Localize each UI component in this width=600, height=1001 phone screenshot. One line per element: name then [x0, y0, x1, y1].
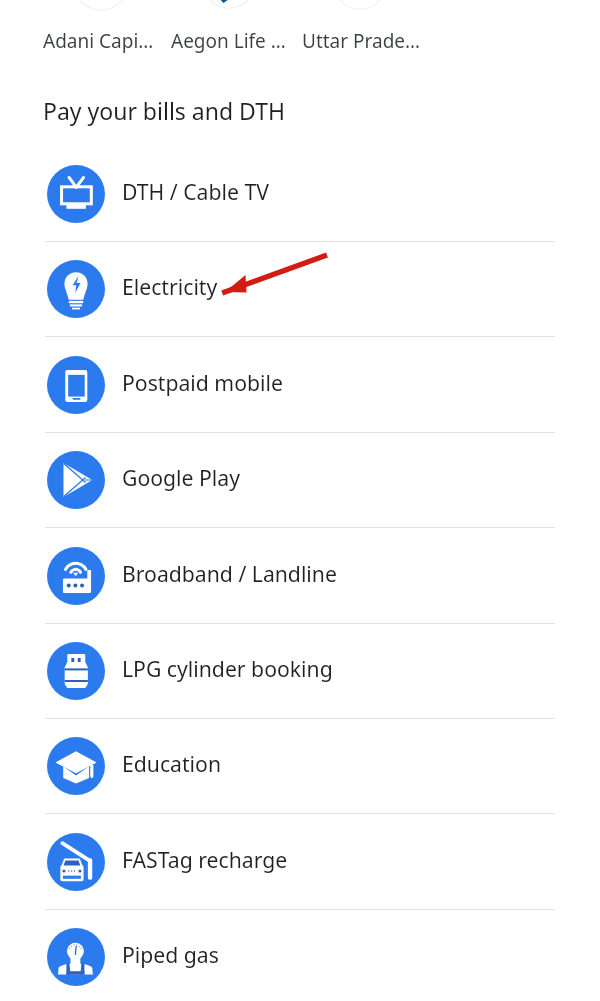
staticText: Aegon Life …: [171, 28, 286, 54]
button[interactable]: Google Play: [0, 432, 600, 527]
button[interactable]: Broadband / Landline: [0, 528, 600, 623]
staticText: Piped gas: [122, 940, 219, 969]
staticText: Google Play: [122, 463, 240, 492]
staticText: Adani Capi…: [43, 28, 154, 54]
button[interactable]: Biller: [201, 0, 257, 9]
button[interactable]: Postpaid mobile: [0, 337, 600, 432]
staticText: Uttar Prade…: [302, 28, 421, 54]
button[interactable]: Biller: [332, 0, 388, 10]
button[interactable]: DTH / Cable TV: [0, 146, 600, 241]
button[interactable]: FASTag recharge: [0, 814, 600, 909]
staticText: Pay your bills and DTH: [43, 95, 285, 126]
button[interactable]: Biller: [73, 0, 129, 11]
staticText: Electricity: [122, 272, 218, 301]
staticText: LPG cylinder booking: [122, 654, 333, 683]
staticText: Postpaid mobile: [122, 368, 283, 397]
button[interactable]: Piped gas: [0, 909, 600, 1001]
staticText: Education: [122, 749, 221, 778]
button[interactable]: LPG cylinder booking: [0, 623, 600, 718]
staticText: DTH / Cable TV: [122, 177, 269, 206]
button[interactable]: Education: [0, 718, 600, 813]
staticText: Broadband / Landline: [122, 559, 337, 588]
button[interactable]: Electricity: [0, 241, 600, 336]
staticText: FASTag recharge: [122, 845, 288, 874]
